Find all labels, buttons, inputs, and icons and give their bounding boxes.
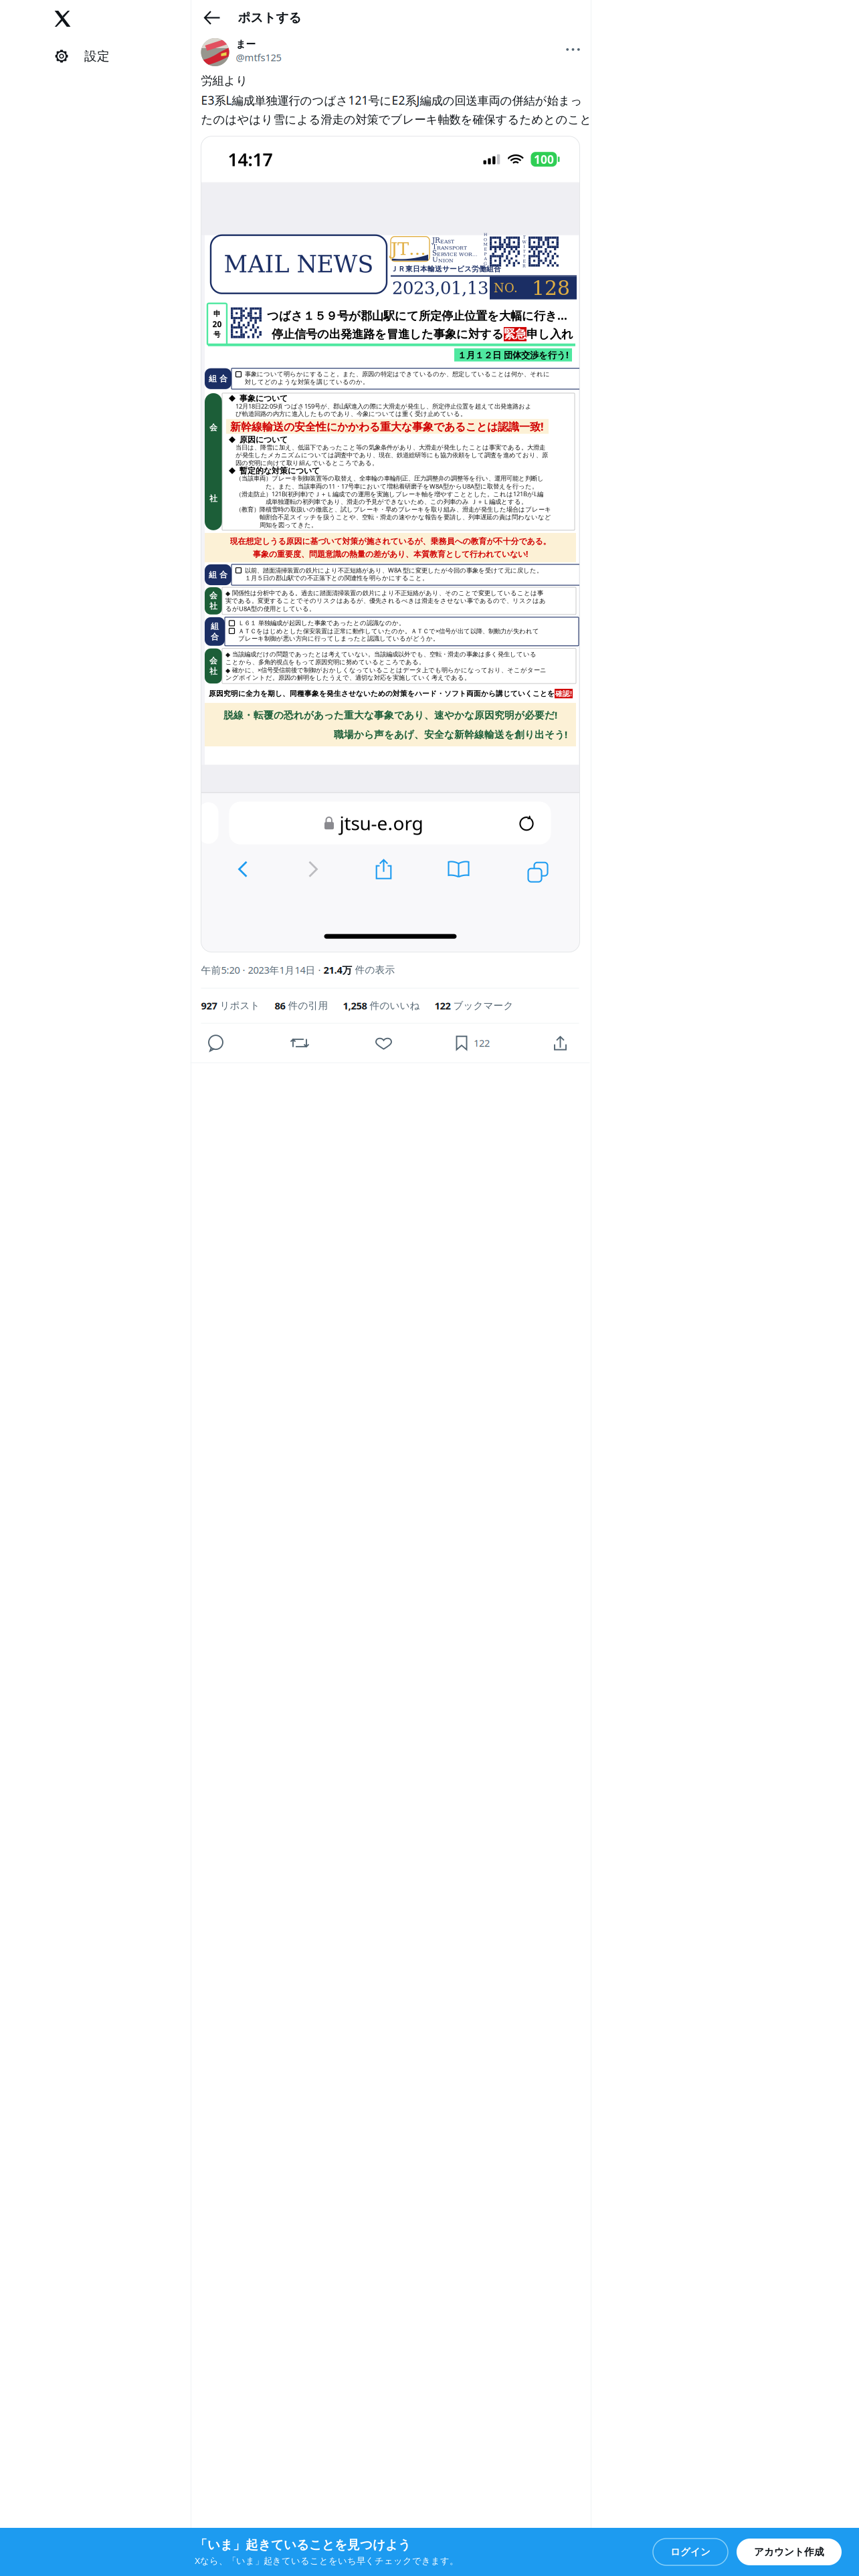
button[interactable]: リポスト	[286, 1030, 313, 1056]
button[interactable]: タブ	[525, 859, 545, 879]
button[interactable]: 戻る	[199, 3, 228, 32]
staticText: 会	[209, 656, 217, 666]
staticText: T	[523, 254, 526, 259]
staticText: 現在想定しうる原因に基づいて対策が施されているが、乗務員への教育が不十分である。	[230, 536, 551, 546]
staticText: １月５日の郡山駅での不正落下との関連性を明らかにすること。	[245, 574, 428, 582]
staticText: jtsu-e.org	[340, 811, 423, 835]
staticText: R	[522, 264, 526, 268]
button[interactable]: 共有	[375, 858, 392, 881]
button[interactable]: 戻る	[236, 858, 251, 881]
staticText: ＪＲ東日本輸送サービス労働組合	[391, 265, 501, 273]
staticText: T	[523, 249, 526, 254]
staticText: 成単独運転の初列車であり、滑走の予見ができないため、この列車のみ Ｊ＋Ｌ編成とす…	[235, 498, 527, 506]
staticText: E3系L編成単独運行のつばさ121号にE2系J編成の回送車両の併結が始まっ	[201, 92, 582, 108]
staticText: 12月18日22:05頃 つばさ159号が、郡山駅進入の際に大滑走が発生し、所定…	[235, 402, 532, 410]
button[interactable]: 927	[201, 999, 260, 1012]
staticText: ＡＴＣをはじめとした保安装置は正常に動作していたのか。ＡＴＣで×信号が出て以降、…	[238, 627, 539, 635]
staticText: 合	[211, 632, 219, 642]
staticText: び軌道回路の内方に進入したものであり、今象については重く受け止めている。	[235, 410, 466, 418]
staticText: 100	[534, 152, 554, 167]
staticText: O	[484, 237, 487, 242]
staticText: が発生したメカニズムについては調査中であり、現在、鉄道総研等にも協力依頼をして調…	[235, 451, 548, 459]
staticText: 事象について	[240, 393, 288, 403]
staticText: H	[484, 232, 487, 237]
button[interactable]: その他	[562, 38, 584, 61]
staticText: 2023,01,13	[392, 278, 488, 298]
staticText: T	[432, 243, 437, 251]
staticText: 周知を図ってきた。	[235, 521, 317, 529]
staticText: 停止信号の出発進路を冒進した事象に対する	[272, 327, 504, 341]
button[interactable]: 設定	[49, 41, 158, 71]
staticText: 以前、踏面清掃装置の鉄片により不正短絡があり、W8A 型に変更したが今回の事象を…	[245, 566, 543, 574]
staticText: 件のいいね	[370, 1000, 420, 1012]
staticText: 原因究明に全力を期し、同種事象を発生させないための対策をハード・ソフト両面から講…	[209, 689, 555, 698]
staticText: まー	[236, 38, 256, 50]
staticText: 社	[209, 601, 217, 611]
staticText: 122	[474, 1036, 490, 1050]
staticText: 件の表示	[352, 964, 395, 976]
staticText: ブックマーク	[453, 1000, 513, 1012]
staticText: 軸割合不足スイッチを扱うことや、空転・滑走の速やかな報告を要請し、列車遅延の責は…	[235, 513, 551, 521]
staticText: U	[432, 255, 438, 263]
staticText: NO.	[494, 281, 518, 295]
staticText: た。また、当該車両の11・17号車において増粘着研磨子をW8A型からU8A型に取…	[235, 482, 538, 490]
staticText: S	[432, 249, 437, 257]
button[interactable]: ログイン	[653, 2539, 728, 2565]
staticText: ことから、多角的視点をもって原因究明に努めているところである。	[225, 658, 425, 666]
staticText: 緊急	[504, 327, 527, 341]
button[interactable]: 1,258	[343, 999, 420, 1012]
staticText: 申	[213, 309, 221, 318]
button[interactable]: ブックマーク	[447, 860, 470, 879]
staticText: JR	[432, 236, 440, 244]
button[interactable]: 返信	[202, 1030, 229, 1056]
staticText: 労組より	[201, 74, 248, 88]
staticText: 社	[209, 666, 217, 676]
staticText: 職場から声をあげ、安全な新幹線輸送を創り出そう!	[334, 728, 567, 741]
staticText: 新幹線輸送の安全性にかかわる重大な事象であることは認識一致!	[230, 419, 544, 434]
staticText: T	[523, 235, 526, 240]
staticText: 脱線・転覆の恐れがあった重大な事象であり、速やかな原因究明が必要だ!	[223, 708, 557, 721]
staticText: EAST	[440, 239, 454, 244]
staticText: 設定	[84, 48, 110, 64]
button[interactable]: いいね	[370, 1030, 397, 1056]
staticText: ブレーキ制御が悪い方向に行ってしまったと認識しているがどうか。	[238, 635, 439, 642]
staticText: 組 合	[209, 570, 227, 580]
button[interactable]: 共有	[547, 1030, 574, 1056]
staticText: つばさ１５９号が郡山駅にて所定停止位置を大幅に行き過ぎ、	[267, 308, 573, 323]
staticText: ◆ 当該編成だけの問題であったとは考えていない。当該編成以外でも、空転・滑走の事…	[225, 651, 537, 658]
button[interactable]: X ホーム	[49, 5, 76, 32]
staticText: ログイン	[670, 2546, 710, 2558]
staticText: （当該車両）ブレーキ制御装置等の取替え、全車輪の車輪削正、圧力調整弁の調整等を行…	[235, 475, 544, 482]
staticText: 128	[532, 276, 570, 300]
staticText: @mtfs125	[236, 51, 281, 64]
staticText: 確認!	[555, 689, 572, 698]
staticText: 社	[209, 494, 217, 503]
button[interactable]: 122	[435, 999, 513, 1012]
staticText: リポスト	[220, 1000, 260, 1012]
staticText: 事象の重要度、問題意識の熱量の差があり、本質教育として行われていない!	[253, 549, 528, 559]
staticText: RANSPORT	[437, 245, 467, 251]
staticText: たのはやはり雪による滑走の対策でブレーキ軸数を確保するためとのこと	[201, 113, 592, 127]
staticText: １月１２日 団体交渉を行う!	[458, 349, 569, 361]
staticText: 原因について	[240, 435, 288, 445]
staticText: 対してどのような対策を講じているのか。	[245, 378, 369, 386]
staticText: E	[523, 259, 526, 264]
staticText: 会	[209, 423, 217, 432]
staticText: 組	[211, 621, 219, 631]
staticText: 会	[209, 591, 217, 600]
staticText: 927	[201, 999, 217, 1012]
staticText: 暫定的な対策について	[240, 466, 320, 476]
staticText: 14:17	[228, 147, 273, 171]
staticText: P	[484, 252, 487, 256]
button[interactable]: 122	[454, 1030, 490, 1056]
staticText: 申し入れ	[527, 327, 573, 341]
staticText: 午前5:20 · 2023年1月14日 ·	[201, 963, 323, 976]
staticText: W	[522, 240, 526, 244]
button[interactable]: 86	[275, 999, 328, 1012]
button[interactable]: アカウント作成	[737, 2539, 842, 2565]
staticText: 事象について明らかにすること。また、原因の特定はできているのか、想定していること…	[245, 370, 550, 378]
staticText: （教育）降積雪時の取扱いの徹底と、試しブレーキ・早めブレーキを取り組み、滑走が発…	[235, 506, 551, 513]
button[interactable]: 進む	[305, 858, 320, 881]
staticText: るがU8A型の使用としている。	[225, 604, 315, 613]
staticText: （滑走防止）121B(初列車)でＪ＋Ｌ編成での運用を実施しブレーキ軸を増やすこと…	[235, 490, 543, 498]
